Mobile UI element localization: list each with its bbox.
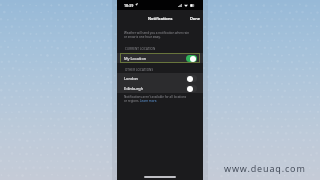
- staticText: CURRENT LOCATION: [125, 47, 156, 51]
- button[interactable]: Edinburgh: [117, 83, 203, 93]
- button[interactable]: My Location: [117, 53, 203, 63]
- staticText: London: [124, 76, 138, 81]
- staticText: Notifications aren't available for all l…: [124, 95, 190, 103]
- button[interactable]: London: [117, 73, 203, 83]
- staticText: 18:39: [124, 3, 134, 8]
- staticText: Edinburgh: [124, 86, 144, 91]
- staticText: Weather will send you a notification whe…: [124, 31, 192, 39]
- button[interactable]: Done: [188, 15, 203, 22]
- staticText: Done: [190, 16, 201, 21]
- staticText: My Location: [124, 56, 147, 61]
- staticText: Notifications: [148, 16, 173, 21]
- button[interactable]: Disabled: [186, 75, 197, 82]
- button[interactable]: Enabled: [186, 55, 197, 62]
- button[interactable]: Disabled: [186, 85, 197, 92]
- staticText: OTHER LOCATIONS: [125, 68, 154, 72]
- staticText: www.deuaq.com: [224, 162, 306, 174]
